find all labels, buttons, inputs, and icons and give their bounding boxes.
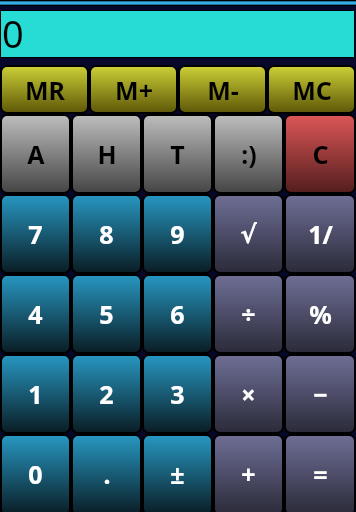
button[interactable]: M+: [89, 65, 178, 114]
button[interactable]: Percent: [284, 274, 356, 354]
button[interactable]: 4: [0, 274, 71, 354]
staticText: 5: [99, 297, 114, 331]
button[interactable]: MR: [0, 65, 89, 114]
staticText: C: [312, 137, 329, 171]
staticText: 3: [170, 377, 185, 411]
button[interactable]: 5: [71, 274, 142, 354]
button[interactable]: A: [0, 114, 71, 194]
staticText: ÷: [241, 297, 256, 331]
staticText: 9: [170, 217, 185, 251]
button[interactable]: Equals: [284, 434, 356, 512]
staticText: √: [240, 220, 257, 249]
staticText: %: [309, 297, 332, 331]
staticText: ±: [170, 457, 185, 491]
staticText: :): [241, 137, 257, 171]
button[interactable]: 6: [142, 274, 213, 354]
staticText: 0: [2, 7, 24, 53]
staticText: 0: [28, 457, 43, 491]
button[interactable]: Plus minus: [142, 434, 213, 512]
button[interactable]: Minus: [284, 354, 356, 434]
button[interactable]: Clear: [284, 114, 356, 194]
button[interactable]: 0: [0, 434, 71, 512]
button[interactable]: About: [213, 114, 284, 194]
staticText: A: [27, 137, 45, 171]
button[interactable]: 8: [71, 194, 142, 274]
button[interactable]: H: [71, 114, 142, 194]
staticText: =: [313, 457, 328, 491]
staticText: +: [241, 457, 256, 491]
staticText: 1: [28, 377, 43, 411]
staticText: T: [170, 137, 185, 171]
staticText: MC: [292, 73, 332, 107]
staticText: 4: [28, 297, 43, 331]
button[interactable]: M-: [178, 65, 267, 114]
button[interactable]: 1: [0, 354, 71, 434]
button[interactable]: Decimal point: [71, 434, 142, 512]
staticText: H: [97, 137, 117, 171]
staticText: .: [103, 457, 111, 491]
button[interactable]: T: [142, 114, 213, 194]
button[interactable]: 2: [71, 354, 142, 434]
button[interactable]: Multiply: [213, 354, 284, 434]
button[interactable]: 3: [142, 354, 213, 434]
button[interactable]: Plus: [213, 434, 284, 512]
staticText: ×: [241, 377, 256, 411]
button[interactable]: 9: [142, 194, 213, 274]
staticText: MR: [25, 73, 65, 107]
staticText: M+: [115, 73, 153, 107]
staticText: 2: [99, 377, 114, 411]
staticText: −: [313, 377, 328, 411]
staticText: 8: [99, 217, 114, 251]
button[interactable]: 7: [0, 194, 71, 274]
staticText: 6: [170, 297, 185, 331]
button[interactable]: Divide: [213, 274, 284, 354]
staticText: M-: [207, 73, 239, 107]
button[interactable]: Square root: [213, 194, 284, 274]
button[interactable]: MC: [267, 65, 356, 114]
staticText: 7: [28, 217, 43, 251]
button[interactable]: Reciprocal: [284, 194, 356, 274]
staticText: 1/: [308, 217, 333, 251]
